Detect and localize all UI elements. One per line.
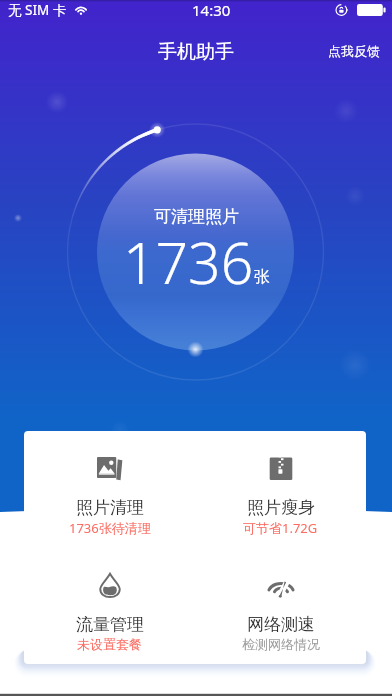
staticText: 未设置套餐 bbox=[77, 636, 142, 652]
staticText: 流量管理 bbox=[76, 614, 144, 635]
staticText: 手机助手 bbox=[158, 40, 234, 64]
button[interactable]: 照片清理 bbox=[24, 431, 195, 548]
staticText: 照片清理 bbox=[76, 497, 144, 518]
button[interactable]: 流量管理 bbox=[24, 548, 195, 664]
staticText: 张 bbox=[254, 267, 270, 287]
staticText: 1736张待清理 bbox=[69, 519, 151, 537]
button[interactable]: 照片瘦身 bbox=[195, 431, 366, 548]
button[interactable]: 点我反馈 bbox=[316, 35, 392, 67]
staticText: 可清理照片 bbox=[154, 206, 239, 227]
staticText: 检测网络情况 bbox=[242, 636, 320, 652]
staticText: 可节省1.72G bbox=[243, 519, 318, 537]
staticText: 点我反馈 bbox=[328, 43, 380, 59]
staticText: 1736 bbox=[123, 223, 254, 301]
staticText: 无 SIM 卡 bbox=[8, 1, 67, 19]
staticText: 网络测速 bbox=[247, 614, 315, 635]
staticText: 照片瘦身 bbox=[247, 497, 315, 518]
staticText: 14:30 bbox=[192, 0, 231, 20]
button[interactable]: 网络测速 bbox=[195, 548, 366, 664]
